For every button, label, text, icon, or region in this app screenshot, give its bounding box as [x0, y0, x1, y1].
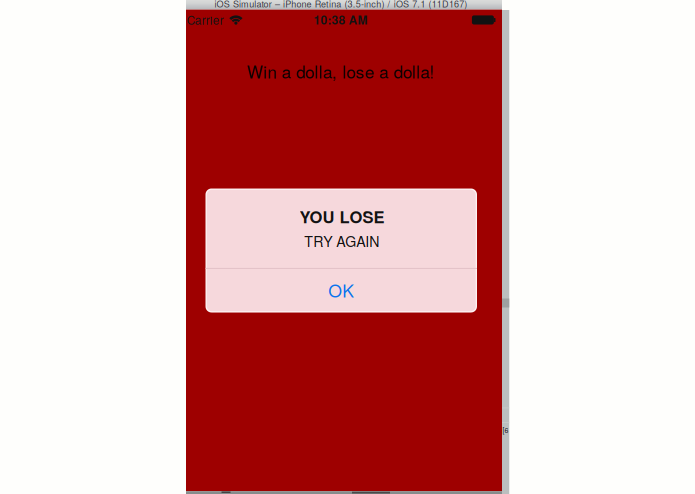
staticText: 10:38 AM	[313, 11, 367, 28]
staticText: YOU LOSE	[300, 205, 385, 228]
staticText: TRY AGAIN	[304, 231, 379, 251]
staticText: OK	[328, 277, 354, 302]
staticText: Win a dolla, lose a dolla!	[247, 59, 434, 83]
staticText: iOS Simulator – iPhone Retina (3.5-inch)…	[214, 0, 467, 10]
staticText: Carrier	[187, 11, 224, 28]
button[interactable]: OK	[206, 268, 477, 312]
staticText: [6	[502, 425, 508, 435]
